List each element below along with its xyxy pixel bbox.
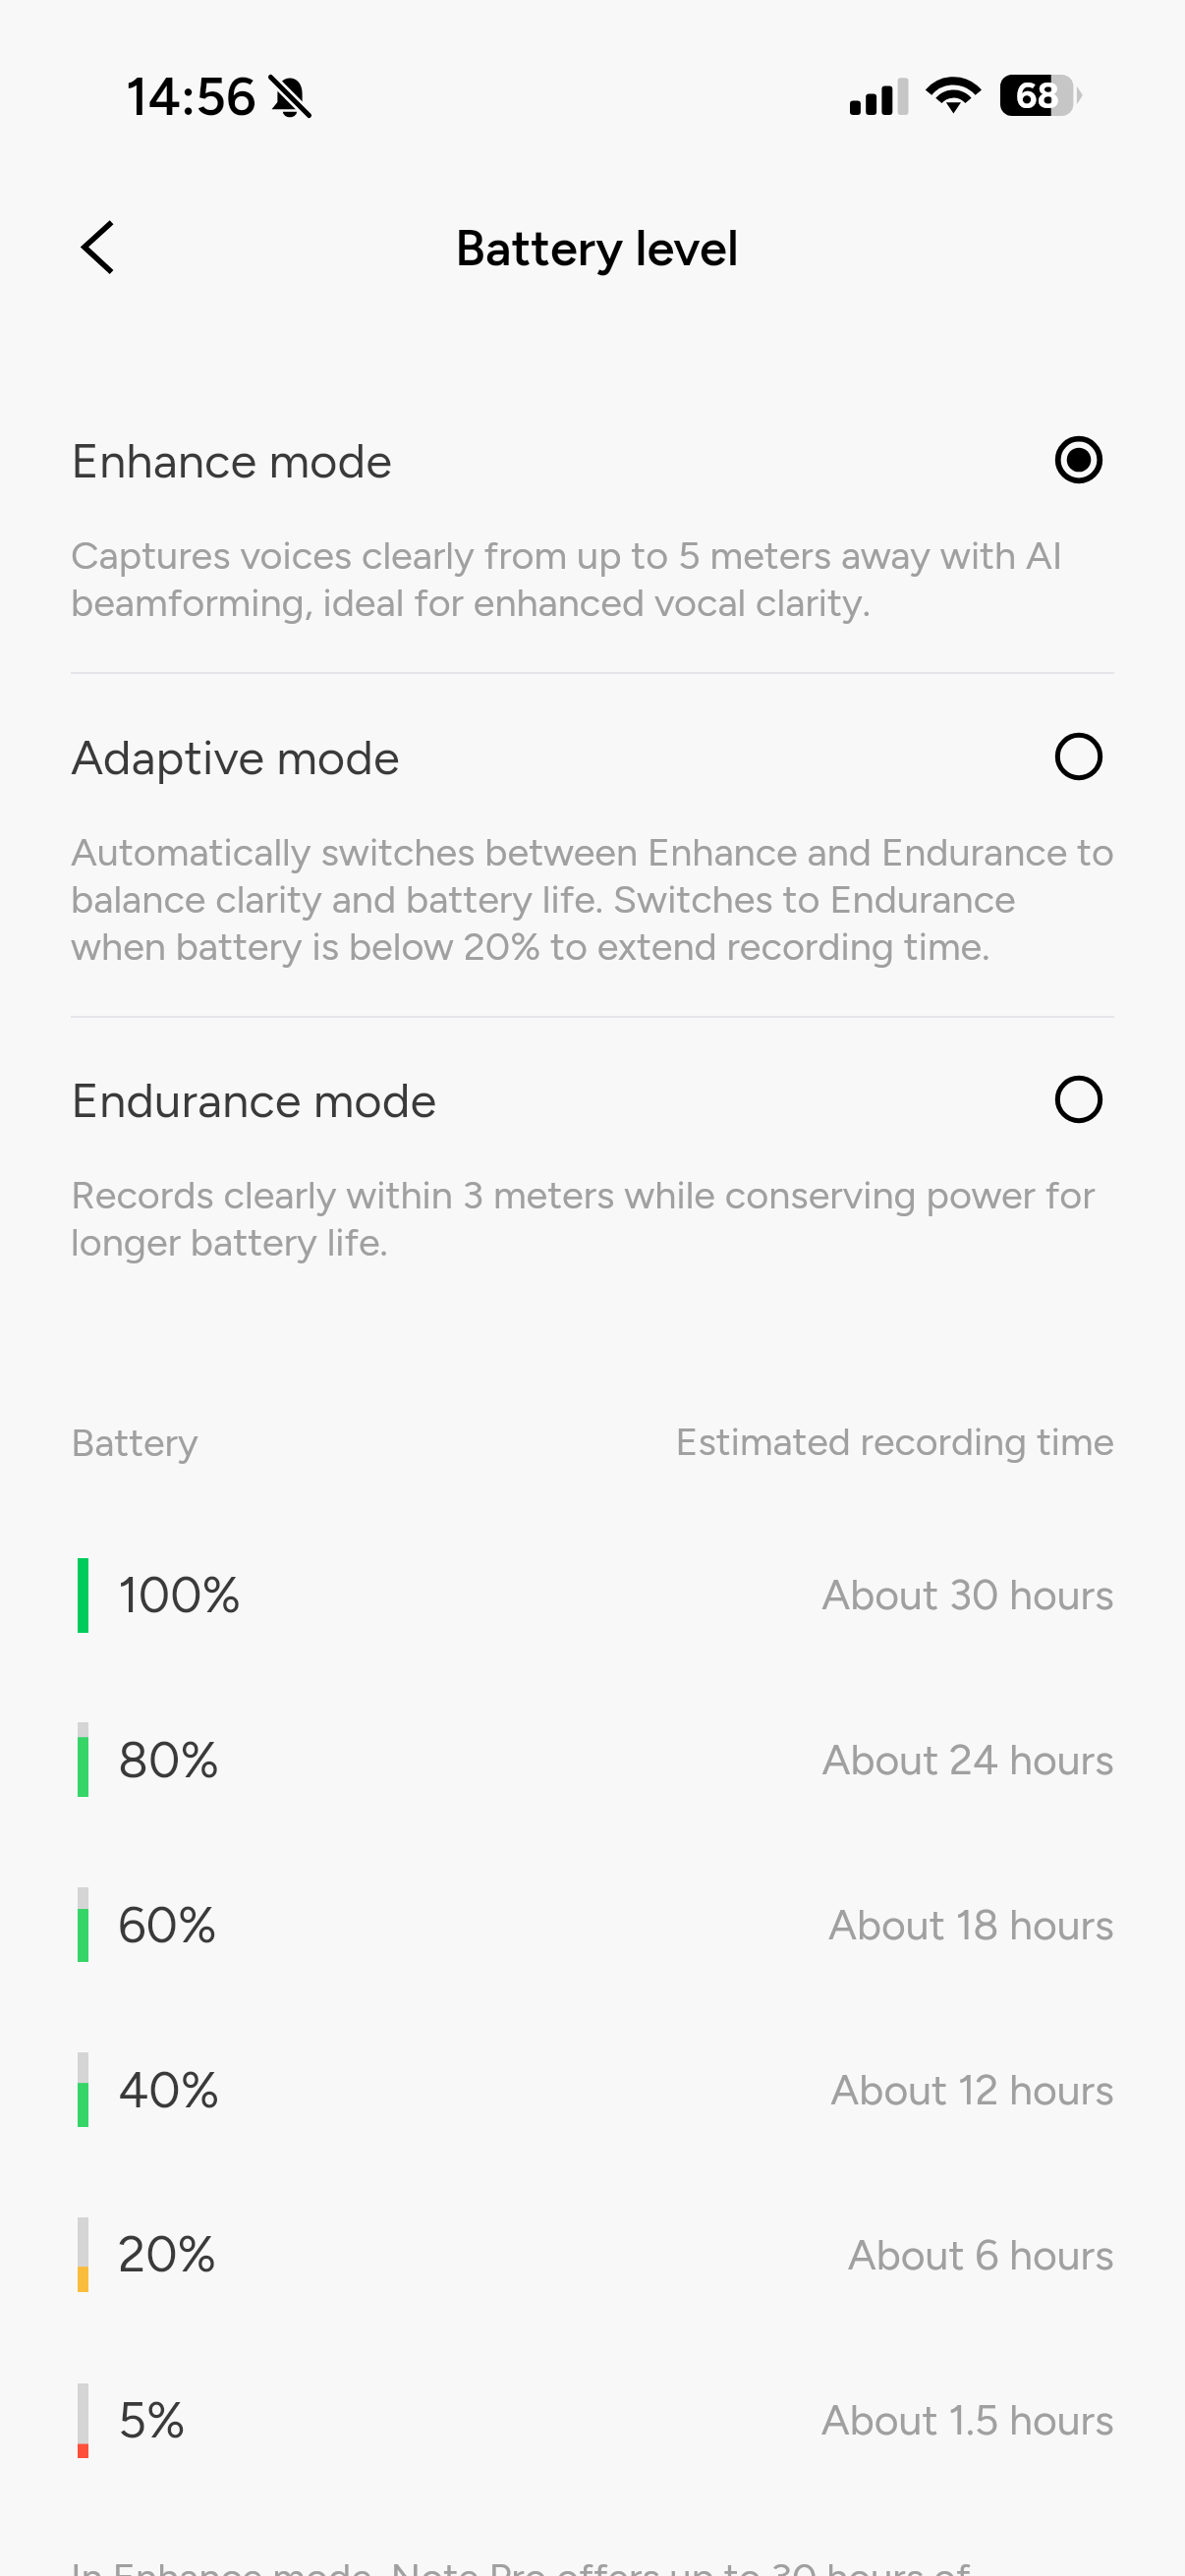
staticText: About 6 hours <box>847 2229 1114 2279</box>
staticText: 20% <box>118 2224 217 2284</box>
staticText: About 30 hours <box>821 1569 1114 1619</box>
staticText: About 12 hours <box>830 2064 1114 2114</box>
staticText: Captures voices clearly from up to 5 met… <box>71 532 1063 579</box>
staticText: 40% <box>118 2060 220 2120</box>
staticText: About 24 hours <box>821 1734 1114 1784</box>
staticText: 100% <box>118 1565 242 1625</box>
staticText: beamforming, ideal for enhanced vocal cl… <box>71 579 871 626</box>
staticText: About 1.5 hours <box>820 2394 1114 2444</box>
staticText: Battery <box>71 1419 198 1465</box>
staticText: Battery level <box>455 218 739 278</box>
staticText: Endurance mode <box>71 1071 437 1129</box>
button[interactable]: Back <box>41 192 151 302</box>
staticText: 5% <box>118 2390 186 2450</box>
button[interactable]: Endurance mode <box>0 1042 1185 1285</box>
staticText: Automatically switches between Enhance a… <box>71 828 1114 875</box>
staticText: Adaptive mode <box>71 728 400 786</box>
staticText: Records clearly within 3 meters while co… <box>71 1171 1096 1218</box>
staticText: 80% <box>118 1730 220 1790</box>
staticText: 60% <box>118 1895 217 1955</box>
staticText: 68 <box>1016 74 1060 115</box>
staticText: In Enhance mode, Note Pro offers up to 3… <box>71 2553 971 2576</box>
staticText: Estimated recording time <box>675 1419 1114 1465</box>
staticText: longer battery life. <box>71 1218 388 1265</box>
staticText: when battery is below 20% to extend reco… <box>71 923 990 970</box>
staticText: Enhance mode <box>71 431 392 489</box>
staticText: About 18 hours <box>827 1899 1114 1949</box>
staticText: balance clarity and battery life. Switch… <box>71 875 1016 923</box>
button[interactable]: Adaptive mode <box>0 700 1185 989</box>
staticText: 14:56 <box>126 65 256 128</box>
button[interactable]: Enhance mode <box>0 403 1185 645</box>
